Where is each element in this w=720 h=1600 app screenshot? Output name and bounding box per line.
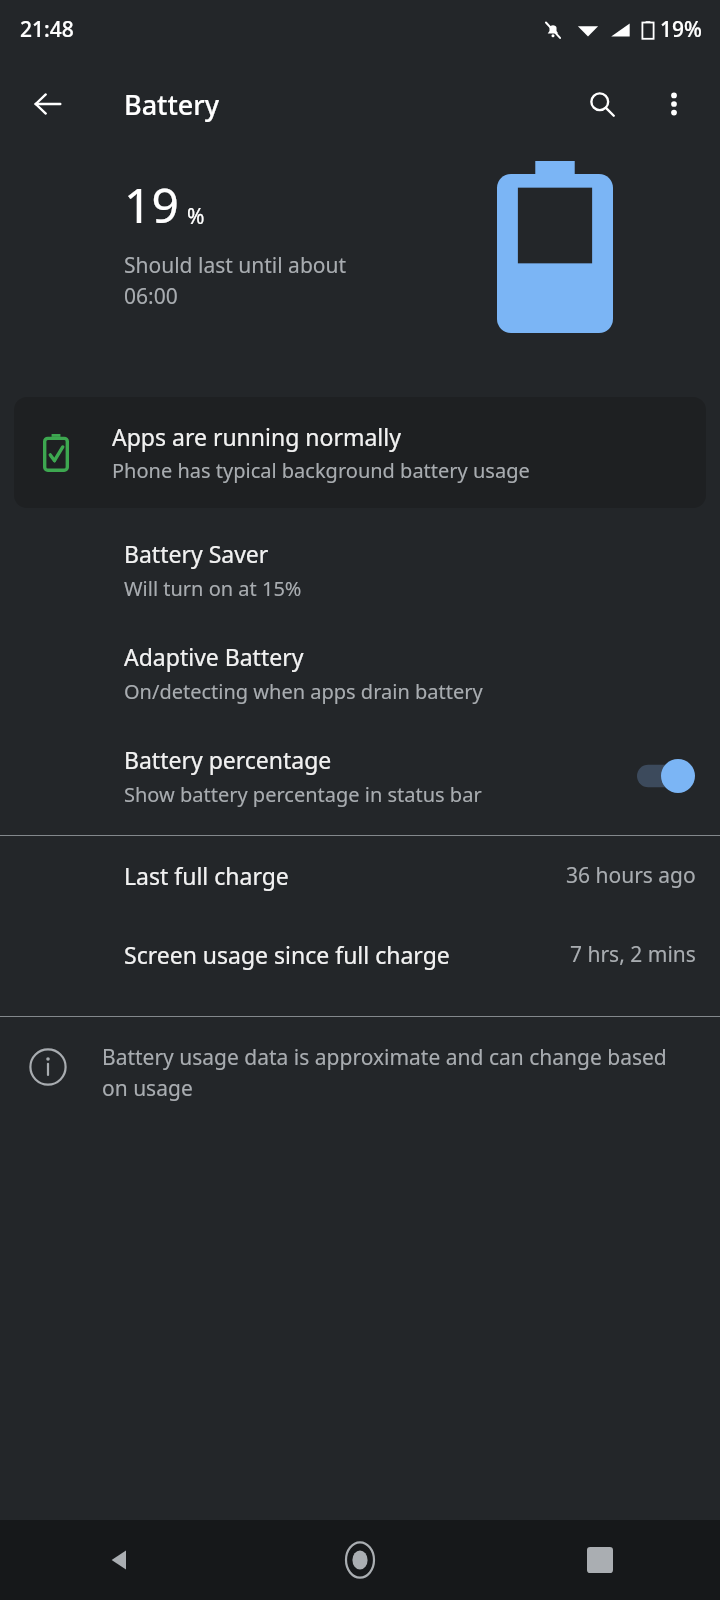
staticText: Will turn on at 15% xyxy=(124,575,302,602)
staticText: 7 hrs, 2 mins xyxy=(570,940,696,969)
staticText: Screen usage since full charge xyxy=(124,939,450,970)
button[interactable]: Last full charge xyxy=(0,836,720,915)
staticText: Last full charge xyxy=(124,860,289,891)
button[interactable]: Battery percentage toggle xyxy=(636,756,696,796)
staticText: Battery usage data is approximate and ca… xyxy=(102,1043,696,1102)
staticText: % xyxy=(187,202,205,231)
staticText: Should last until about 06:00 xyxy=(124,251,347,310)
staticText: 21:48 xyxy=(20,15,74,44)
staticText: On/detecting when apps drain battery xyxy=(124,678,483,705)
button[interactable]: Back xyxy=(22,78,74,130)
button[interactable]: Recent apps xyxy=(560,1520,640,1600)
button[interactable]: Apps are running normally xyxy=(14,397,706,508)
staticText: 19% xyxy=(660,15,702,44)
button[interactable]: Home xyxy=(320,1520,400,1600)
staticText: Phone has typical background battery usa… xyxy=(112,457,530,484)
staticText: Show battery percentage in status bar xyxy=(124,781,482,808)
button[interactable]: Screen usage since full charge xyxy=(0,915,720,994)
button[interactable]: Battery percentage xyxy=(0,734,720,818)
button[interactable]: Adaptive Battery xyxy=(0,631,720,715)
button[interactable]: Search xyxy=(576,78,628,130)
staticText: Adaptive Battery xyxy=(124,641,304,672)
staticText: Battery Saver xyxy=(124,538,269,569)
button[interactable]: Battery Saver xyxy=(0,528,720,612)
button[interactable]: Back xyxy=(80,1520,160,1600)
staticText: 19 xyxy=(124,172,179,237)
button[interactable]: More options xyxy=(648,78,700,130)
staticText: Battery percentage xyxy=(124,744,332,775)
staticText: Battery xyxy=(124,86,219,123)
staticText: 36 hours ago xyxy=(566,861,696,890)
staticText: Apps are running normally xyxy=(112,421,401,452)
